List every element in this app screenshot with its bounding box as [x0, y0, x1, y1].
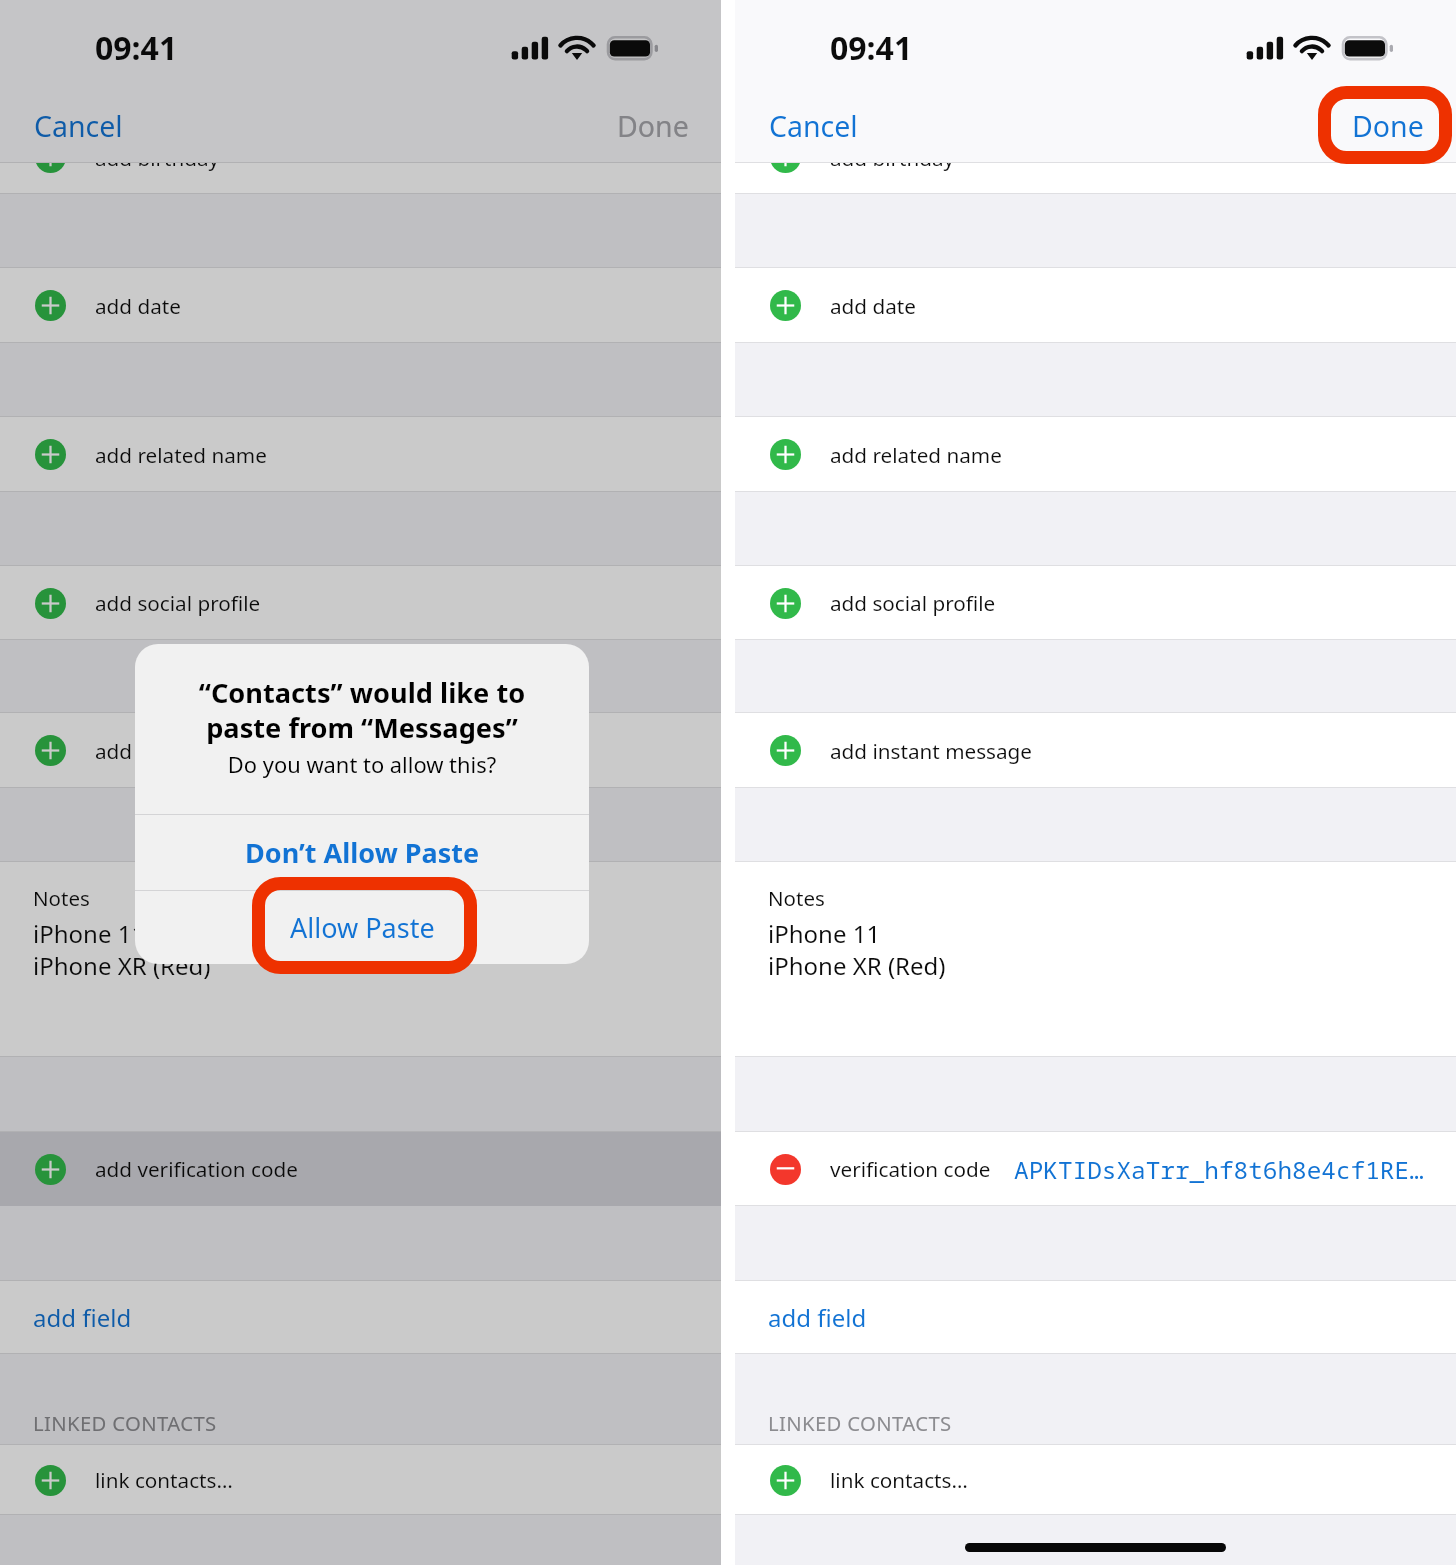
button[interactable]: add field — [0, 1281, 721, 1354]
button[interactable]: link contacts… — [735, 1445, 1456, 1515]
staticText: iPhone 11 — [768, 917, 881, 950]
staticText: Notes — [768, 884, 825, 912]
staticText: add date — [95, 292, 181, 320]
staticText: verification code — [830, 1155, 991, 1183]
button[interactable]: Done — [599, 98, 707, 155]
button[interactable]: add date — [0, 268, 721, 343]
staticText: add related name — [95, 441, 267, 469]
staticText: add date — [830, 292, 916, 320]
button[interactable]: Notes — [0, 862, 721, 1057]
button[interactable]: add social profile — [735, 566, 1456, 640]
button[interactable]: add instant message — [735, 713, 1456, 788]
staticText: Done — [1352, 107, 1424, 146]
staticText: iPhone XR (Red) — [33, 949, 211, 982]
staticText: Cancel — [34, 107, 123, 146]
staticText: add instant message — [95, 737, 297, 765]
button[interactable]: Cancel — [16, 98, 141, 155]
staticText: 09:41 — [95, 26, 178, 70]
button[interactable]: add related name — [735, 417, 1456, 492]
button[interactable]: link contacts… — [0, 1445, 721, 1515]
staticText: add birthday — [95, 144, 220, 172]
other: Done highlight — [1318, 86, 1452, 164]
staticText: add instant message — [830, 737, 1032, 765]
staticText: add related name — [830, 441, 1002, 469]
button[interactable]: Notes — [735, 862, 1456, 1057]
staticText: add social profile — [95, 589, 261, 617]
staticText: iPhone 11 — [33, 917, 146, 950]
staticText: Notes — [33, 884, 90, 912]
staticText: “Contacts” would like to paste from “Mes… — [157, 674, 567, 746]
staticText: add verification code — [95, 1155, 298, 1183]
staticText: iPhone XR (Red) — [768, 949, 946, 982]
staticText: Cancel — [769, 107, 858, 146]
staticText: add field — [33, 1301, 132, 1334]
button[interactable]: add field — [735, 1281, 1456, 1354]
button[interactable]: add date — [735, 268, 1456, 343]
button[interactable]: add instant message — [0, 713, 721, 788]
staticText: 09:41 — [830, 26, 913, 70]
button[interactable]: Allow Paste — [135, 891, 589, 964]
staticText: LINKED CONTACTS — [33, 1409, 217, 1437]
staticText: Allow Paste — [290, 909, 435, 946]
staticText: add social profile — [830, 589, 996, 617]
staticText: add field — [768, 1301, 867, 1334]
staticText: add birthday — [830, 144, 955, 172]
button[interactable]: verification code — [735, 1132, 1456, 1206]
button[interactable]: Cancel — [751, 98, 876, 155]
staticText: APKTIDsXaTrr_hf8t6h8e4cf1RE… — [1014, 1153, 1434, 1186]
staticText: Done — [617, 107, 689, 146]
staticText: Do you want to allow this? — [149, 750, 575, 780]
staticText: link contacts… — [830, 1466, 968, 1494]
button[interactable]: add related name — [0, 417, 721, 492]
button[interactable]: Done — [1334, 98, 1442, 155]
button[interactable]: add verification code — [0, 1132, 721, 1206]
button[interactable]: Don’t Allow Paste — [135, 815, 589, 890]
button[interactable]: add social profile — [0, 566, 721, 640]
button[interactable]: add birthday — [735, 121, 1456, 194]
other: Allow Paste highlight — [252, 877, 477, 974]
button[interactable]: add birthday — [0, 121, 721, 194]
staticText: Don’t Allow Paste — [245, 834, 480, 871]
staticText: LINKED CONTACTS — [768, 1409, 952, 1437]
staticText: link contacts… — [95, 1466, 233, 1494]
